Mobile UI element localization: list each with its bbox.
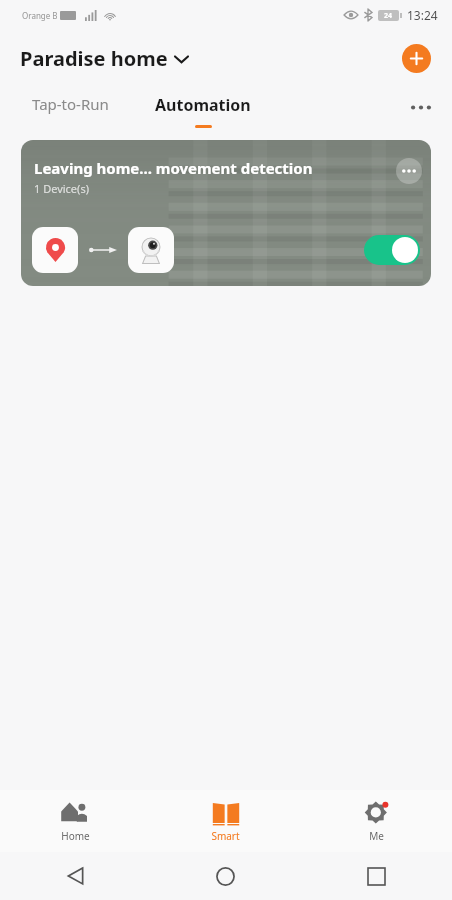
staticText: Me [369, 829, 384, 843]
staticText: Leaving home... movement detection [34, 158, 313, 178]
button[interactable]: Home [0, 794, 150, 849]
button[interactable]: Automation enabled [364, 235, 420, 265]
staticText: 13:24 [407, 7, 438, 23]
button[interactable]: Automation [149, 86, 257, 128]
button[interactable]: Smart [150, 794, 301, 849]
button[interactable]: Me [301, 794, 452, 849]
staticText: 1 Device(s) [34, 181, 89, 196]
button[interactable]: Leaving home... movement detection [21, 140, 431, 286]
button[interactable]: Paradise home [0, 41, 196, 76]
button[interactable]: Automation options [396, 158, 422, 184]
button[interactable]: Recent apps [301, 852, 452, 900]
button[interactable]: Back [0, 852, 150, 900]
button[interactable]: Home [150, 852, 301, 900]
staticText: Home [61, 829, 90, 843]
staticText: Orange B [22, 10, 58, 21]
button[interactable]: Tap-to-Run [20, 86, 121, 122]
staticText: 24 [384, 11, 393, 21]
staticText: Smart [211, 829, 240, 843]
staticText: Paradise home [20, 45, 168, 72]
staticText: Tap-to-Run [32, 94, 109, 114]
button[interactable]: Add automation [402, 44, 431, 73]
button[interactable]: More options [404, 90, 438, 124]
staticText: Automation [155, 94, 251, 116]
